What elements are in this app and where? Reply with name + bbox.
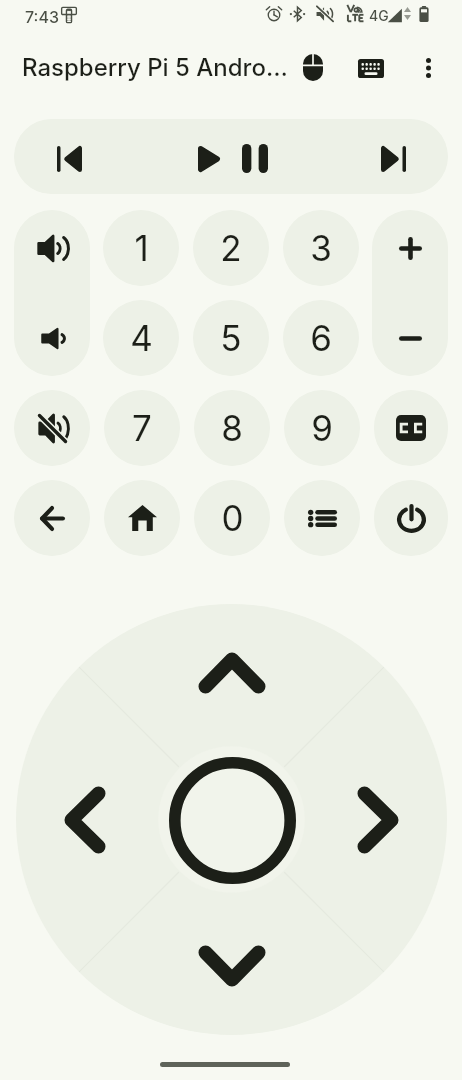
button[interactable]: 6 bbox=[283, 300, 359, 376]
button[interactable]: 4 bbox=[103, 300, 179, 376]
button[interactable]: 2 bbox=[193, 210, 269, 286]
staticText: 1 bbox=[134, 227, 149, 269]
button[interactable]: Menu bbox=[284, 480, 360, 556]
button[interactable]: Left bbox=[47, 782, 123, 858]
staticText: 2 bbox=[220, 227, 242, 269]
button[interactable]: Closed captions bbox=[374, 390, 448, 466]
button[interactable]: Down bbox=[194, 928, 270, 1004]
button[interactable]: Channel up bbox=[372, 210, 448, 286]
staticText: 4 bbox=[130, 317, 153, 359]
button[interactable]: Home bbox=[104, 480, 180, 556]
staticText: 6 bbox=[310, 317, 332, 359]
button[interactable]: Mute bbox=[14, 390, 90, 466]
button[interactable]: Volume up bbox=[14, 210, 90, 286]
button[interactable]: Keyboard bbox=[349, 46, 393, 90]
button[interactable]: Right bbox=[340, 782, 416, 858]
button[interactable]: 7 bbox=[104, 390, 180, 466]
staticText: 7 bbox=[132, 407, 152, 449]
button[interactable]: Channel down bbox=[372, 300, 448, 376]
staticText: Raspberry Pi 5 Andro… bbox=[22, 53, 288, 82]
button[interactable]: Mouse bbox=[291, 45, 335, 89]
staticText: 8 bbox=[221, 407, 243, 449]
button[interactable]: Next bbox=[371, 136, 416, 181]
button[interactable]: More options bbox=[406, 46, 450, 90]
button[interactable]: 0 bbox=[194, 480, 270, 556]
staticText: 5 bbox=[220, 317, 242, 359]
button[interactable]: Back bbox=[14, 480, 90, 556]
button[interactable]: 5 bbox=[193, 300, 269, 376]
staticText: 7:43 bbox=[25, 7, 59, 26]
button[interactable]: OK bbox=[159, 747, 305, 893]
button[interactable]: 3 bbox=[283, 210, 359, 286]
button[interactable]: 8 bbox=[194, 390, 270, 466]
button[interactable]: Play bbox=[186, 136, 231, 181]
button[interactable]: Pause bbox=[232, 136, 277, 181]
button[interactable]: 1 bbox=[103, 210, 179, 286]
button[interactable]: Previous bbox=[47, 136, 92, 181]
button[interactable]: Volume down bbox=[14, 300, 90, 376]
staticText: 4G bbox=[369, 7, 389, 24]
staticText: 0 bbox=[221, 497, 244, 539]
staticText: 9 bbox=[311, 407, 333, 449]
button[interactable]: Up bbox=[194, 635, 270, 711]
button[interactable]: Power bbox=[374, 480, 448, 556]
staticText: 3 bbox=[310, 227, 332, 269]
button[interactable]: 9 bbox=[284, 390, 360, 466]
